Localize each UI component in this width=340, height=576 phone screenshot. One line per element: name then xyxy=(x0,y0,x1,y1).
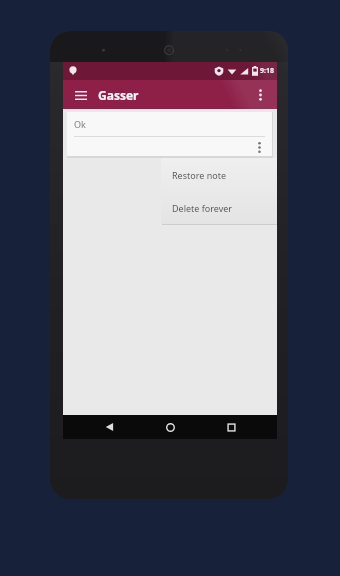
button[interactable]: Home xyxy=(155,415,185,439)
button[interactable]: Note options xyxy=(250,138,268,156)
button[interactable]: Open navigation drawer xyxy=(70,84,92,106)
button[interactable]: Delete forever xyxy=(161,191,277,224)
button[interactable]: Ok xyxy=(67,112,272,156)
staticText: Ok xyxy=(74,118,86,130)
staticText: Gasser xyxy=(98,87,139,103)
staticText: Delete forever xyxy=(172,202,233,214)
button[interactable]: Restore note xyxy=(161,158,277,191)
button[interactable]: Recent apps xyxy=(216,415,246,439)
button[interactable]: More options xyxy=(249,84,271,106)
staticText: Restore note xyxy=(172,169,226,181)
staticText: 9:18 xyxy=(260,66,274,76)
button[interactable]: Back xyxy=(94,415,124,439)
